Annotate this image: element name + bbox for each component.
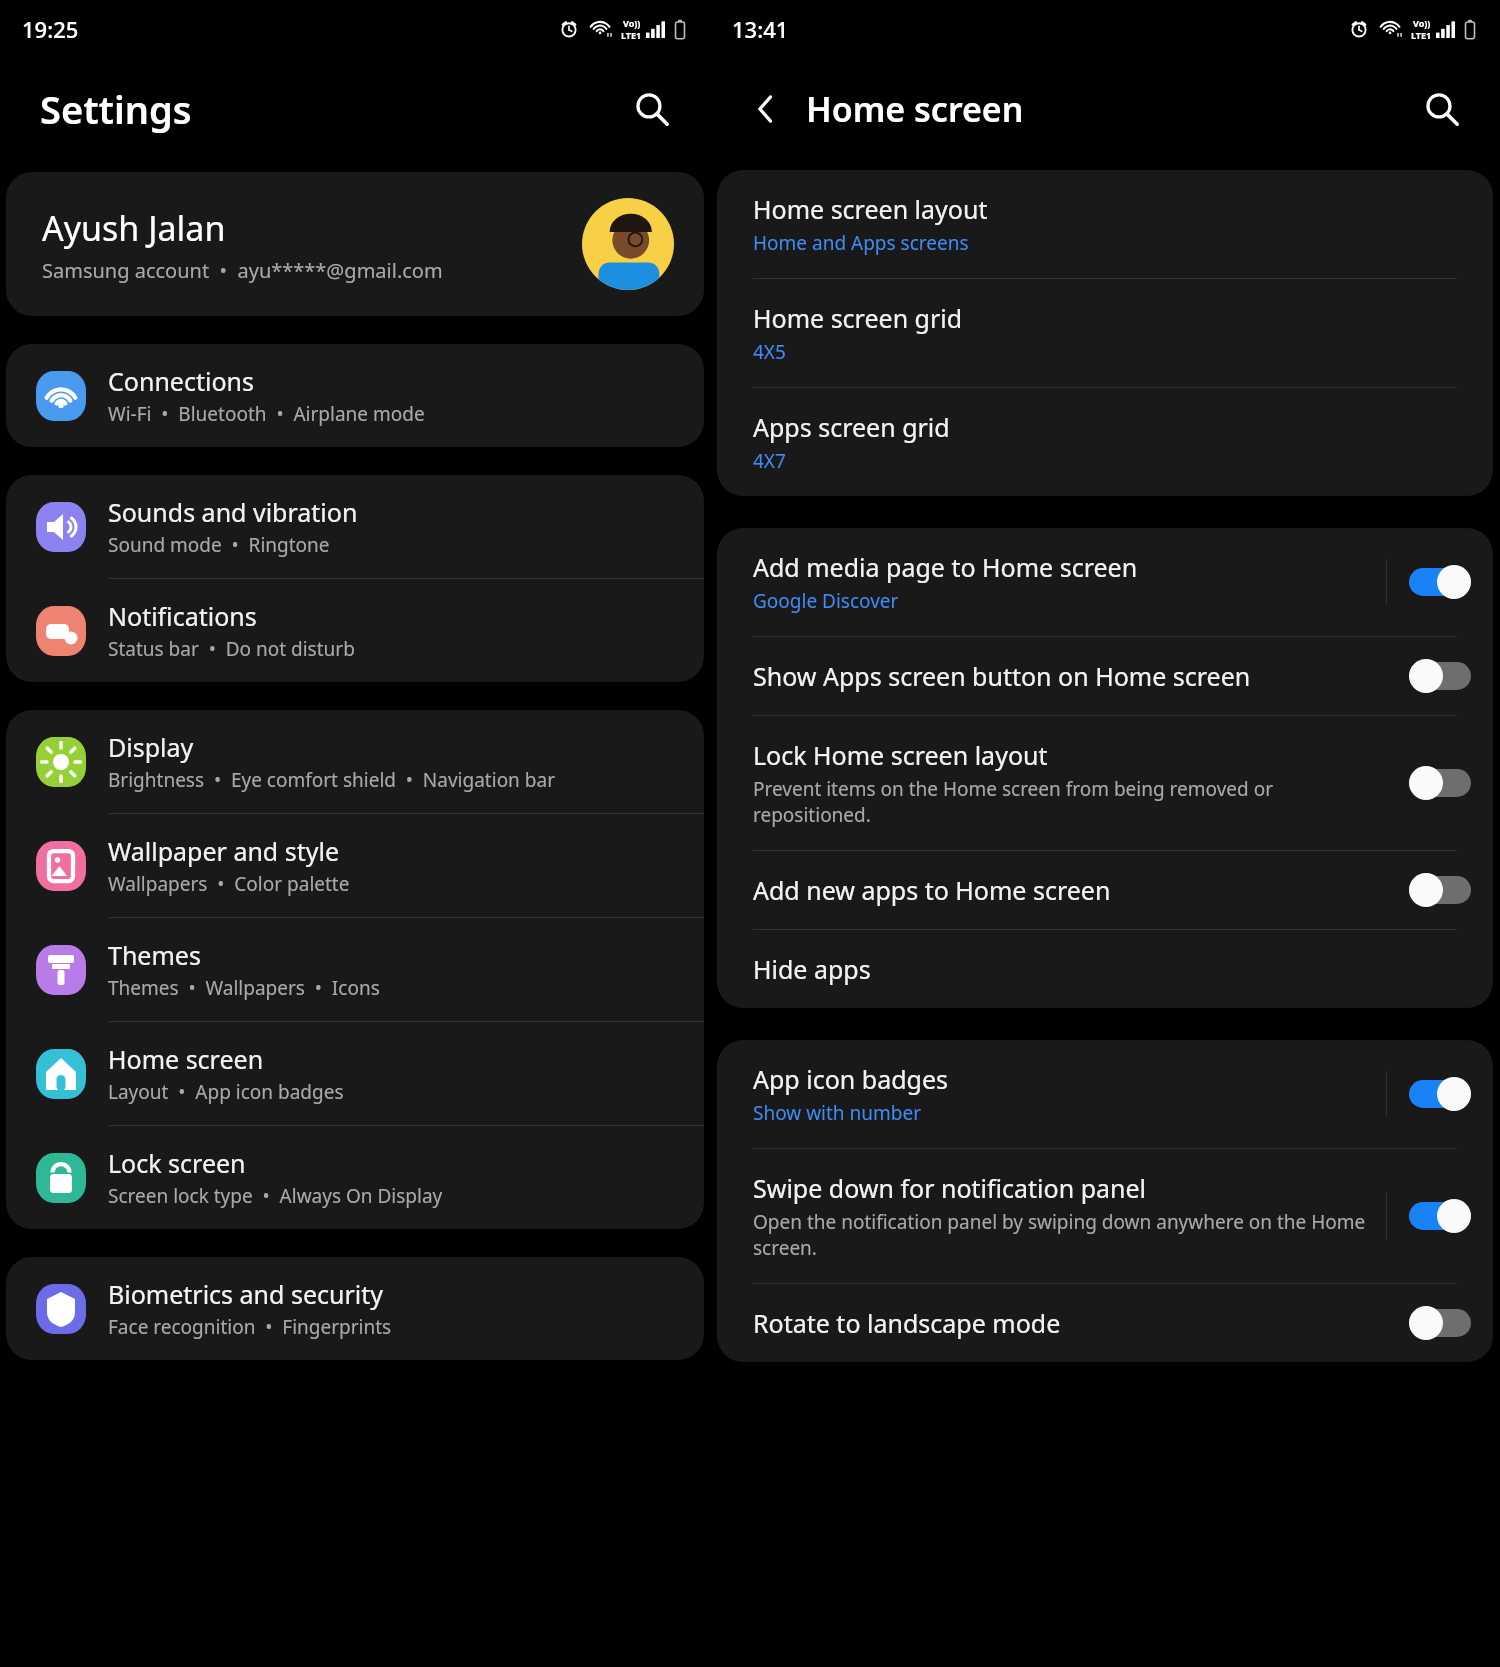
button[interactable]: Sounds and vibration — [6, 475, 704, 579]
staticText: Add new apps to Home screen — [753, 873, 1111, 907]
staticText: Biometrics and security — [108, 1277, 384, 1311]
staticText: Sound mode • Ringtone — [108, 532, 330, 558]
button[interactable]: Biometrics and security — [6, 1257, 704, 1360]
staticText: Swipe down for notification panel — [753, 1171, 1147, 1205]
staticText: Home screen layout — [753, 192, 988, 226]
staticText: Show with number — [753, 1100, 922, 1126]
button[interactable]: Lock screen — [6, 1126, 704, 1229]
button[interactable]: Swipe down for notification panel — [717, 1149, 1493, 1284]
staticText: Vo)) — [1413, 17, 1431, 29]
button[interactable]: Hide apps — [717, 930, 1493, 1008]
staticText: Status bar • Do not disturb — [108, 636, 355, 662]
staticText: Themes — [108, 938, 201, 972]
staticText: Prevent items on the Home screen from be… — [753, 776, 1372, 828]
staticText: Notifications — [108, 599, 257, 633]
staticText: Home and Apps screens — [753, 230, 969, 256]
staticText: Home screen — [108, 1042, 264, 1076]
button[interactable]: Wallpaper and style — [6, 814, 704, 918]
button[interactable]: Rotate to landscape mode — [717, 1284, 1493, 1362]
staticText: Samsung account • ayu*****@gmail.com — [42, 257, 443, 284]
button[interactable]: App icon badges — [717, 1040, 1493, 1149]
button[interactable]: Search — [626, 83, 678, 135]
staticText: Display — [108, 730, 194, 764]
button[interactable]: Home screen layout — [717, 170, 1493, 279]
staticText: Wallpapers • Color palette — [108, 871, 350, 897]
button[interactable]: Ayush Jalan — [6, 172, 704, 316]
staticText: Wi-Fi • Bluetooth • Airplane mode — [108, 401, 425, 427]
staticText: Settings — [40, 83, 192, 135]
staticText: Lock screen — [108, 1146, 246, 1180]
button[interactable]: Lock Home screen layout — [717, 716, 1493, 851]
staticText: Rotate to landscape mode — [753, 1306, 1061, 1340]
staticText: 19:25 — [22, 14, 79, 44]
staticText: 4X7 — [753, 448, 786, 474]
staticText: Ayush Jalan — [42, 205, 226, 251]
staticText: Home screen — [806, 86, 1024, 132]
staticText: Connections — [108, 364, 254, 398]
staticText: Brightness • Eye comfort shield • Naviga… — [108, 767, 555, 793]
staticText: LTE1 — [621, 29, 642, 41]
button[interactable]: Apps screen grid — [717, 388, 1493, 496]
staticText: Wallpaper and style — [108, 834, 340, 868]
staticText: App icon badges — [753, 1062, 948, 1096]
button[interactable]: Home screen grid — [717, 279, 1493, 388]
staticText: Lock Home screen layout — [753, 738, 1048, 772]
button[interactable]: Search — [1416, 83, 1468, 135]
staticText: Layout • App icon badges — [108, 1079, 344, 1105]
button[interactable]: Show Apps screen button on Home screen — [717, 637, 1493, 716]
staticText: Vo)) — [623, 17, 641, 29]
staticText: 13:41 — [732, 14, 789, 44]
staticText: Add media page to Home screen — [753, 550, 1138, 584]
button[interactable]: Add media page to Home screen — [717, 528, 1493, 637]
staticText: Home screen grid — [753, 301, 963, 335]
staticText: Google Discover — [753, 588, 899, 614]
button[interactable]: Add new apps to Home screen — [717, 851, 1493, 930]
staticText: Apps screen grid — [753, 410, 950, 444]
button[interactable]: Home screen — [6, 1022, 704, 1126]
staticText: Screen lock type • Always On Display — [108, 1183, 443, 1209]
staticText: Sounds and vibration — [108, 495, 358, 529]
button[interactable]: Back — [740, 83, 792, 135]
button[interactable]: Connections — [6, 344, 704, 447]
button[interactable]: Display — [6, 710, 704, 814]
staticText: Show Apps screen button on Home screen — [753, 659, 1251, 693]
staticText: Hide apps — [753, 952, 871, 986]
staticText: LTE1 — [1411, 29, 1432, 41]
button[interactable]: Notifications — [6, 579, 704, 682]
staticText: Themes • Wallpapers • Icons — [108, 975, 380, 1001]
staticText: Open the notification panel by swiping d… — [753, 1209, 1372, 1261]
button[interactable]: Themes — [6, 918, 704, 1022]
staticText: Face recognition • Fingerprints — [108, 1314, 392, 1340]
staticText: 4X5 — [753, 339, 786, 365]
